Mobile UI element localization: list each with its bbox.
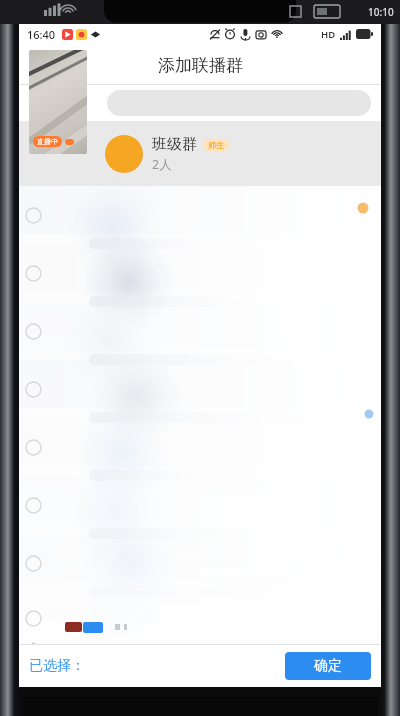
- button[interactable]: [107, 90, 371, 116]
- button[interactable]: [19, 186, 381, 244]
- button[interactable]: [19, 476, 381, 534]
- staticText: 添加联播群: [158, 55, 243, 76]
- staticText: 2人: [152, 156, 172, 173]
- button[interactable]: 已选择：: [29, 657, 85, 675]
- button[interactable]: [19, 418, 381, 476]
- button[interactable]: 正在直播的视频: [29, 50, 87, 154]
- staticText: 10:10: [368, 5, 394, 19]
- button[interactable]: [19, 302, 381, 360]
- button[interactable]: [19, 534, 381, 592]
- button[interactable]: 确定: [285, 652, 371, 680]
- button[interactable]: [19, 592, 381, 644]
- staticText: 16:40: [27, 27, 56, 42]
- staticText: 直播中: [37, 137, 58, 146]
- button[interactable]: 班级群: [152, 135, 371, 173]
- staticText: HD: [321, 28, 336, 41]
- staticText: 师生: [208, 140, 224, 150]
- button[interactable]: [19, 244, 381, 302]
- staticText: 确定: [314, 657, 342, 675]
- staticText: 班级群: [152, 135, 197, 154]
- button[interactable]: [19, 360, 381, 418]
